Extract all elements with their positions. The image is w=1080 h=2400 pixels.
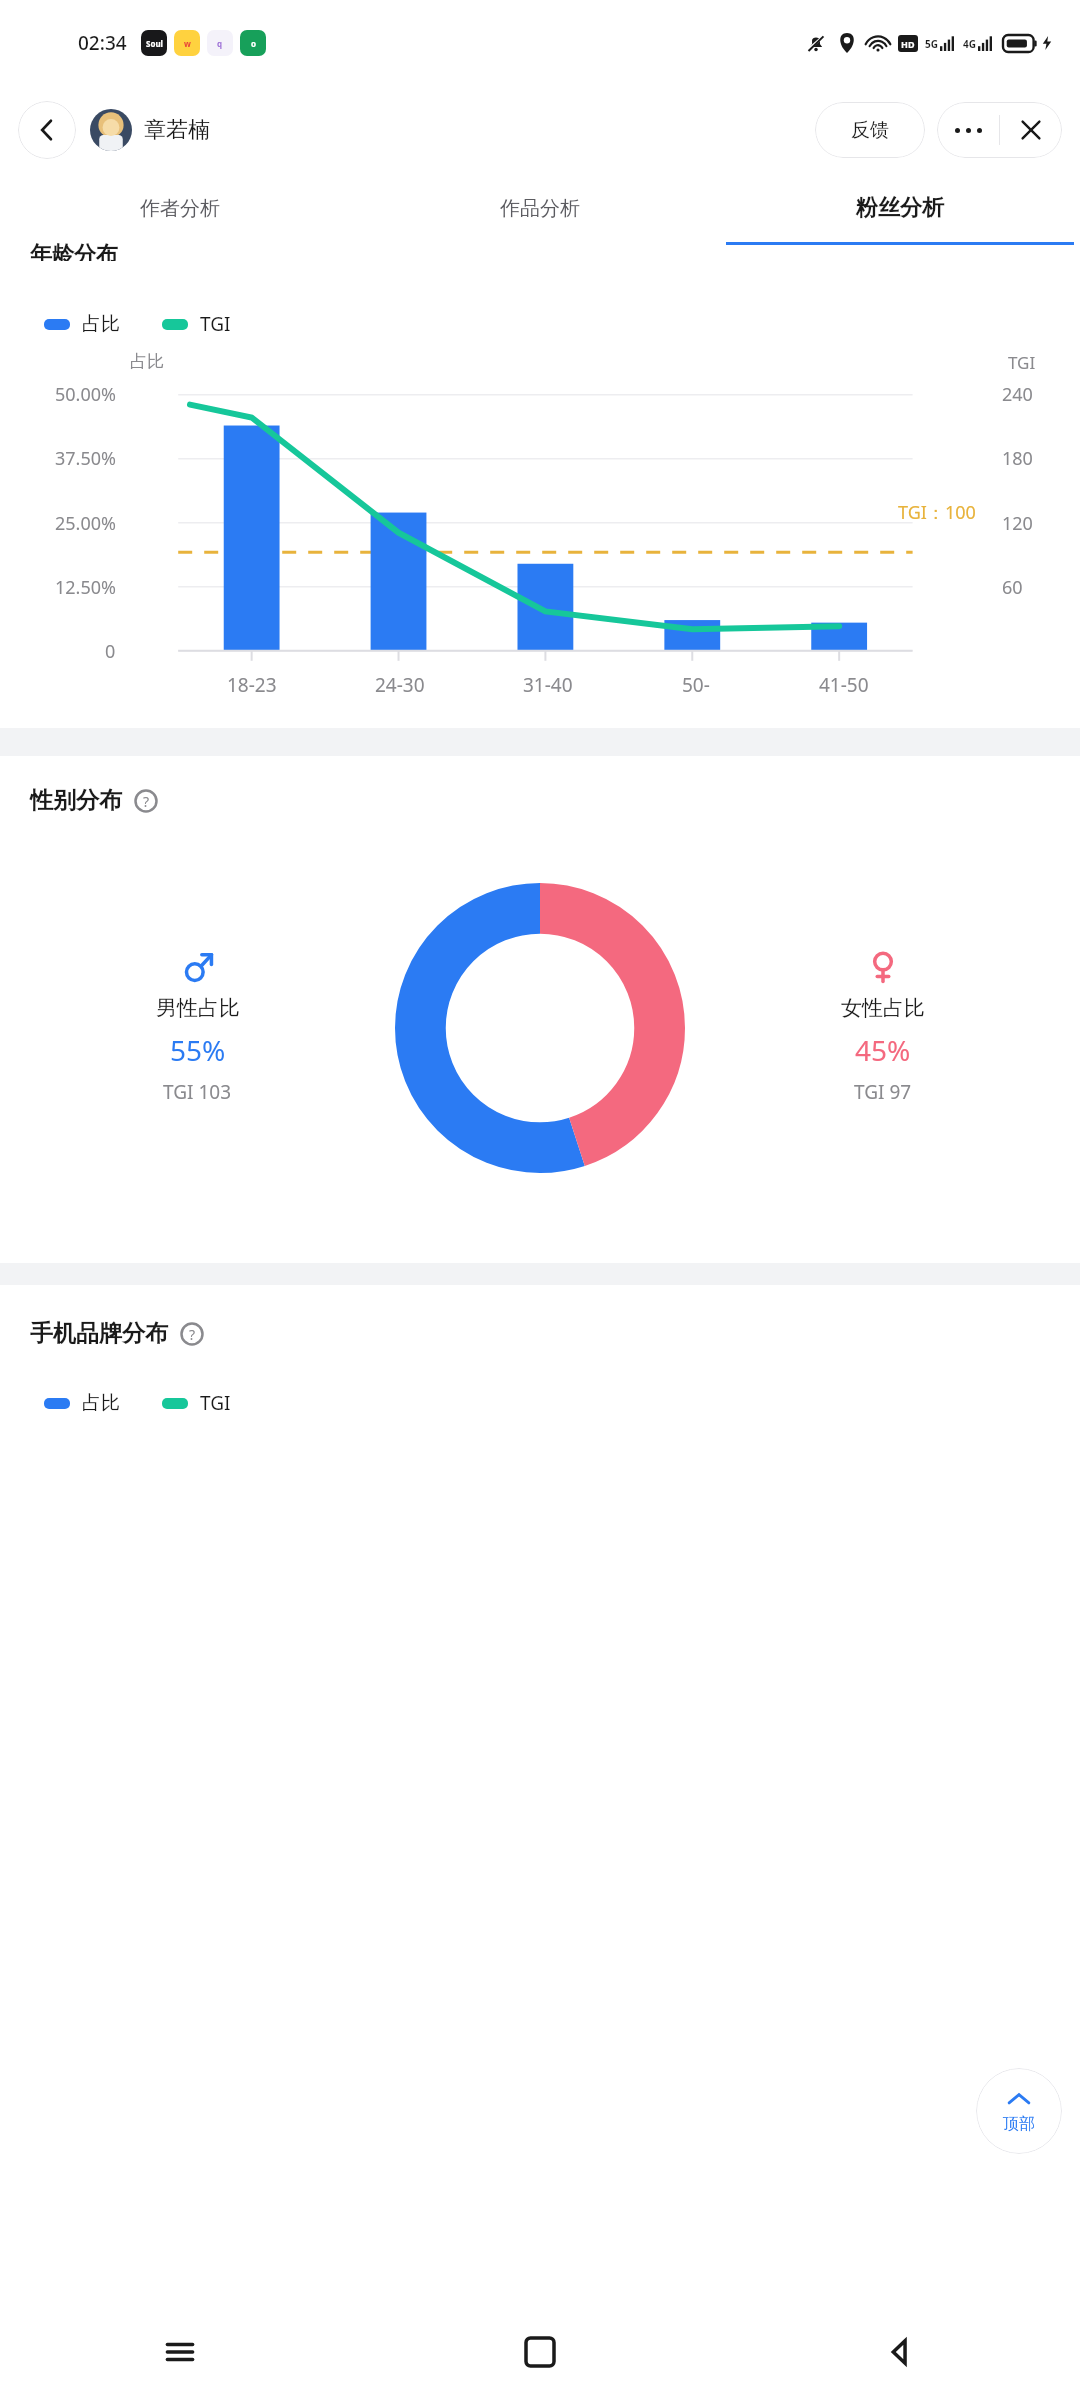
staticText: 手机品牌分布 — [30, 1319, 168, 1348]
staticText: 50.00% — [55, 382, 116, 407]
staticText: 120 — [1002, 511, 1033, 536]
staticText: TGI — [1008, 351, 1036, 374]
button[interactable]: Back — [18, 101, 76, 159]
staticText: 25.00% — [55, 511, 116, 536]
staticText: 作者分析 — [140, 196, 220, 221]
staticText: 50- — [682, 672, 710, 698]
staticText: 章若楠 — [144, 116, 210, 144]
staticText: w — [184, 38, 191, 49]
staticText: TGI： — [898, 500, 945, 525]
staticText: 顶部 — [1003, 2114, 1035, 2134]
staticText: 100 — [945, 500, 976, 525]
staticText: 24-30 — [375, 672, 425, 698]
staticText: 反馈 — [851, 118, 889, 142]
button[interactable]: More — [937, 102, 999, 158]
staticText: 男性占比 — [156, 995, 240, 1021]
staticText: 占比 — [82, 312, 120, 336]
staticText: 年龄分布 — [30, 241, 118, 261]
staticText: ? — [189, 1325, 196, 1344]
staticText: 女性占比 — [841, 995, 925, 1021]
staticText: TGI 103 — [163, 1079, 232, 1105]
button[interactable]: Recents — [0, 2304, 360, 2400]
staticText: 5G — [925, 37, 938, 51]
button[interactable]: Home — [360, 2304, 720, 2400]
staticText: 180 — [1002, 446, 1033, 471]
staticText: Soul — [146, 38, 163, 49]
staticText: 02:34 — [78, 30, 127, 56]
staticText: 性别分布 — [30, 786, 122, 815]
button[interactable]: Back — [720, 2304, 1080, 2400]
staticText: 占比 — [130, 351, 164, 372]
staticText: 作品分析 — [500, 196, 580, 221]
staticText: 0 — [105, 639, 116, 664]
button[interactable]: Back to top — [976, 2068, 1062, 2154]
button[interactable]: 作品分析 — [360, 174, 720, 242]
staticText: 12.50% — [55, 575, 116, 600]
staticText: 60 — [1002, 575, 1023, 600]
staticText: 45% — [855, 1031, 911, 1069]
staticText: 37.50% — [55, 446, 116, 471]
staticText: TGI — [200, 1390, 231, 1416]
staticText: 4G — [963, 37, 976, 51]
staticText: TGI — [200, 311, 231, 337]
button[interactable]: 作者分析 — [0, 174, 360, 242]
staticText: 41-50 — [819, 672, 869, 698]
button[interactable]: 粉丝分析 — [720, 174, 1080, 242]
staticText: o — [251, 38, 256, 49]
button[interactable]: Close — [1000, 102, 1062, 158]
button[interactable]: 反馈 — [815, 102, 925, 158]
staticText: 240 — [1002, 382, 1033, 407]
staticText: 18-23 — [227, 672, 277, 698]
button[interactable]: 章若楠 — [90, 109, 210, 151]
staticText: 31-40 — [523, 672, 573, 698]
button[interactable]: Help — [180, 1322, 204, 1346]
staticText: ? — [143, 792, 150, 811]
staticText: HD — [901, 38, 915, 50]
staticText: TGI 97 — [854, 1079, 912, 1105]
button[interactable]: Help — [134, 789, 158, 813]
staticText: 占比 — [82, 1391, 120, 1415]
staticText: 粉丝分析 — [856, 194, 944, 222]
staticText: 55% — [170, 1031, 226, 1069]
staticText: q — [217, 38, 223, 49]
